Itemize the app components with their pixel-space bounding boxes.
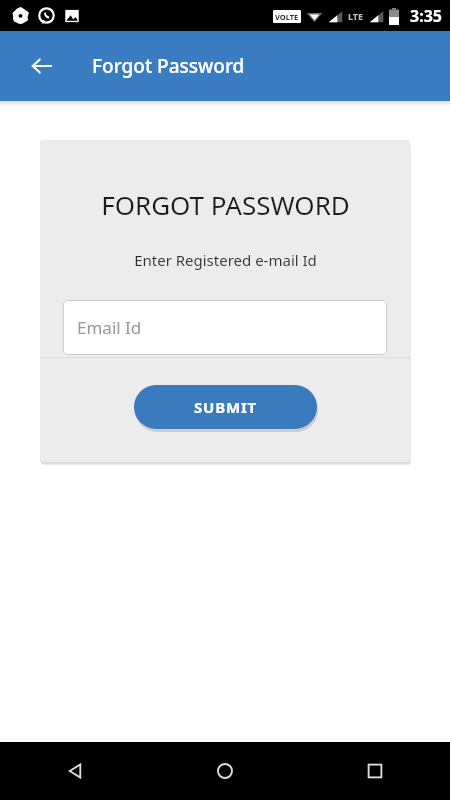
staticText: FORGOT PASSWORD (101, 187, 350, 222)
button[interactable]: Email Id (63, 300, 387, 355)
button[interactable]: Home (150, 742, 300, 800)
staticText: 3:35 (410, 5, 442, 27)
staticText: Enter Registered e-mail Id (134, 250, 317, 270)
staticText: VOLTE (275, 12, 299, 22)
button[interactable]: Back (0, 742, 150, 800)
button[interactable]: Back (20, 44, 64, 88)
staticText: Email Id (77, 316, 142, 339)
staticText: Forgot Password (92, 53, 245, 79)
button[interactable]: SUBMIT (134, 385, 317, 429)
button[interactable]: Recent apps (300, 742, 450, 800)
staticText: SUBMIT (194, 397, 258, 417)
staticText: LTE (348, 10, 364, 22)
